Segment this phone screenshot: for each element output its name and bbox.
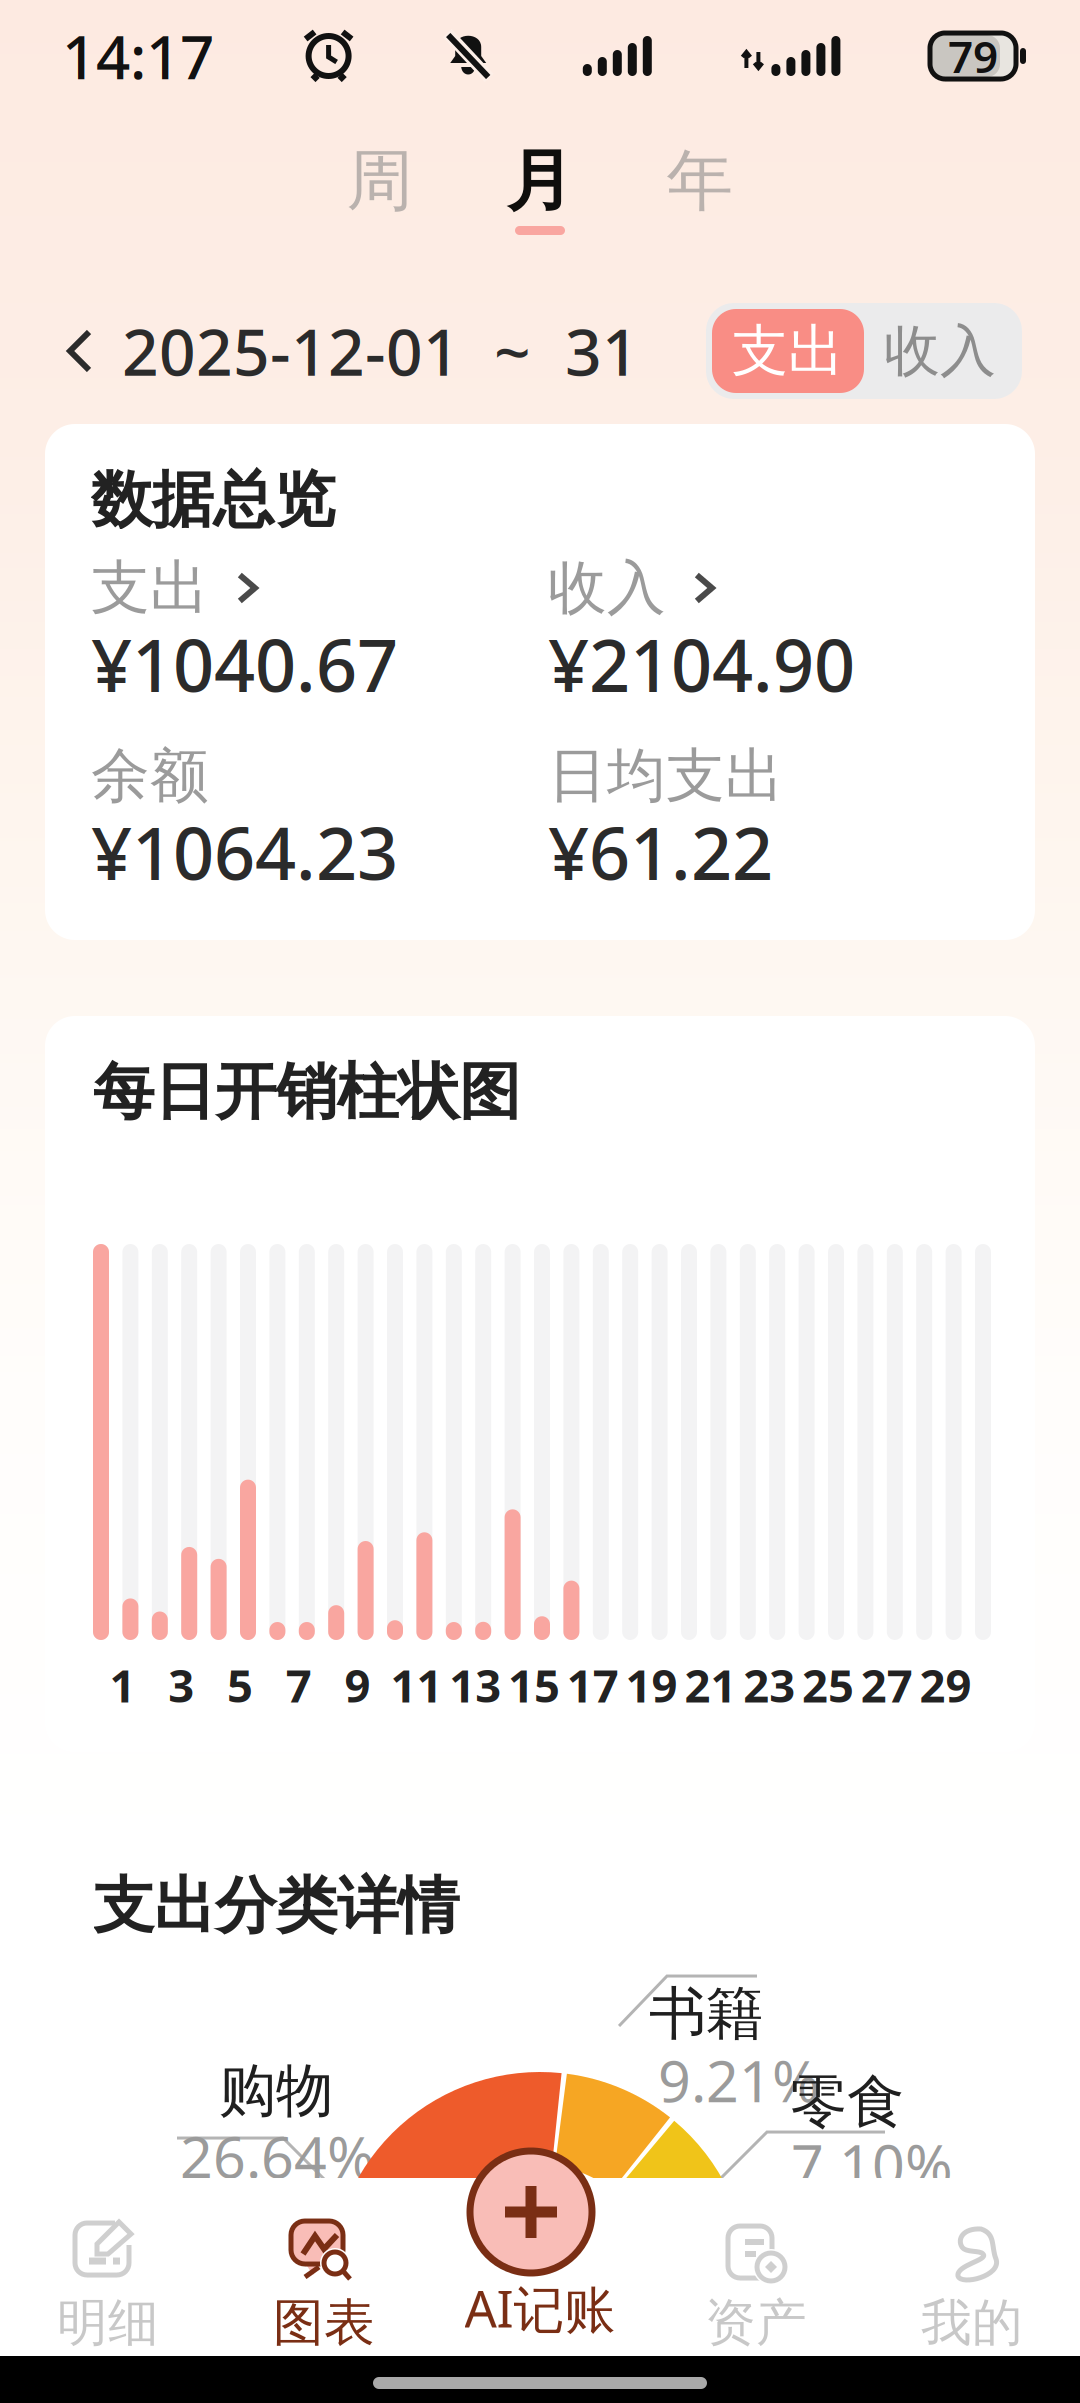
staticText: 11 <box>390 1655 442 1715</box>
staticText: 25 <box>802 1655 854 1715</box>
staticText: 1 <box>109 1655 135 1715</box>
button[interactable]: AI记账 <box>432 2178 648 2356</box>
staticText: 7.10% <box>791 2126 953 2202</box>
button[interactable]: 图表 <box>216 2178 432 2356</box>
staticText: 购物 <box>219 2056 333 2126</box>
staticText: 周 <box>346 140 413 222</box>
staticText: ¥61.22 <box>548 804 773 900</box>
staticText: ¥2104.90 <box>548 616 855 712</box>
staticText: 支出 <box>91 552 209 624</box>
staticText: 27 <box>861 1655 913 1715</box>
staticText: 月 <box>506 140 573 222</box>
staticText: 数据总览 <box>91 462 335 538</box>
staticText: 年 <box>666 140 733 222</box>
button[interactable]: AI 记账 <box>470 2151 592 2273</box>
staticText: 2025-12-01 ~ 31 <box>122 308 639 393</box>
staticText: 19 <box>626 1655 678 1715</box>
staticText: 3 <box>168 1655 194 1715</box>
staticText: 13 <box>449 1655 501 1715</box>
staticText: ¥1064.23 <box>91 804 398 900</box>
staticText: 明细 <box>57 2292 159 2354</box>
staticText: 每日开销柱状图 <box>93 1054 520 1130</box>
staticText: 收入 <box>884 317 996 385</box>
staticText: 日均支出 <box>548 740 784 812</box>
button[interactable]: 资产 <box>648 2178 864 2356</box>
staticText: 29 <box>920 1655 972 1715</box>
staticText: 23 <box>743 1655 795 1715</box>
staticText: 17 <box>567 1655 619 1715</box>
staticText: 余额 <box>91 740 209 812</box>
button[interactable]: 明细 <box>0 2178 216 2356</box>
staticText: 9.21% <box>658 2042 820 2118</box>
staticText: 26.64% <box>180 2118 375 2194</box>
staticText: 书籍 <box>649 1979 763 2049</box>
staticText: 5 <box>227 1655 253 1715</box>
staticText: 我的 <box>921 2292 1023 2354</box>
button[interactable]: 支出 <box>91 558 548 696</box>
staticText: 收入 <box>548 552 666 624</box>
button[interactable]: 2025-12-01 ~ 31 <box>0 296 663 406</box>
staticText: 支出分类详情 <box>93 1868 459 1944</box>
button[interactable]: 月 <box>460 134 620 254</box>
staticText: 15 <box>508 1655 560 1715</box>
staticText: 支出 <box>732 317 844 385</box>
button[interactable]: 收入 <box>548 558 1005 696</box>
button[interactable]: 年 <box>620 134 780 254</box>
staticText: ¥1040.67 <box>91 616 398 712</box>
staticText: 14:17 <box>62 16 214 96</box>
staticText: 零食 <box>790 2067 904 2137</box>
button[interactable]: 周 <box>300 134 460 254</box>
staticText: 79 <box>948 27 998 85</box>
staticText: 21 <box>684 1655 736 1715</box>
staticText: AI记账 <box>464 2274 615 2342</box>
staticText: 9 <box>345 1655 371 1715</box>
button[interactable]: 我的 <box>864 2178 1080 2356</box>
staticText: 资产 <box>705 2292 807 2354</box>
button[interactable]: 支出 <box>712 309 864 393</box>
button[interactable]: 收入 <box>864 309 1016 393</box>
staticText: 图表 <box>273 2292 375 2354</box>
staticText: 7 <box>286 1655 312 1715</box>
